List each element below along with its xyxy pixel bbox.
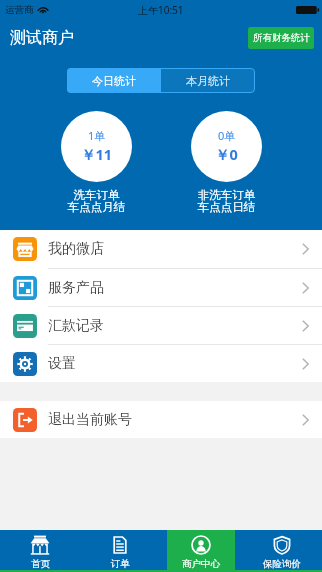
button[interactable]: 设置 [0, 345, 322, 382]
staticText: 上午10:51 [138, 3, 184, 17]
button[interactable]: 1单 [61, 111, 132, 182]
button[interactable]: 本月统计 [161, 68, 255, 93]
button[interactable]: 我的微店 [0, 230, 322, 268]
button[interactable]: 汇款记录 [0, 307, 322, 344]
staticText: 服务产品 [48, 279, 104, 297]
staticText: 今日统计 [92, 74, 136, 88]
staticText: 订单 [111, 558, 130, 570]
button[interactable]: 0单 [191, 111, 262, 182]
staticText: 本月统计 [186, 74, 230, 88]
staticText: 运营商 [5, 4, 34, 16]
button[interactable]: 退出当前账号 [0, 401, 322, 438]
staticText: 退出当前账号 [48, 411, 132, 429]
button[interactable]: 订单 [80, 530, 160, 572]
staticText: 所有财务统计 [253, 32, 310, 44]
staticText: 设置 [48, 355, 76, 373]
button[interactable]: 所有财务统计 [248, 27, 314, 49]
staticText: ￥11 [81, 144, 113, 164]
button[interactable]: 首页 [0, 530, 80, 572]
button[interactable]: 今日统计 [67, 68, 161, 93]
staticText: 0单 [218, 128, 236, 143]
button[interactable]: 商户中心 [160, 530, 241, 572]
button[interactable]: 服务产品 [0, 269, 322, 306]
staticText: 非洗车订单 车点点日结 [182, 188, 271, 215]
staticText: ￥0 [215, 144, 238, 164]
staticText: 首页 [31, 558, 50, 570]
staticText: 保险询价 [263, 558, 301, 570]
staticText: 我的微店 [48, 240, 104, 258]
staticText: 1单 [88, 128, 106, 143]
staticText: 商户中心 [182, 558, 220, 570]
staticText: 汇款记录 [48, 317, 104, 335]
staticText: 洗车订单 车点点月结 [52, 188, 141, 215]
button[interactable]: 保险询价 [241, 530, 322, 572]
staticText: 测试商户 [10, 28, 74, 48]
